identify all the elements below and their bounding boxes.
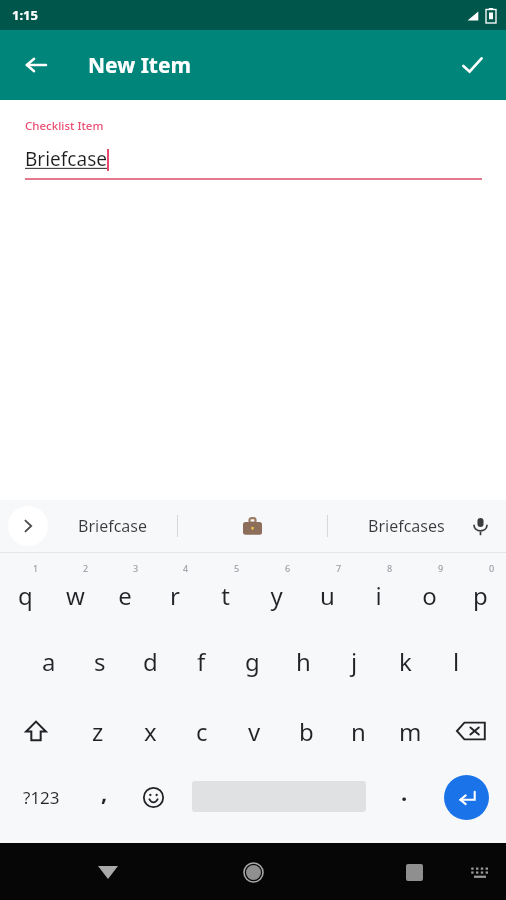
staticText: m — [399, 715, 422, 748]
button[interactable]: 4 — [150, 558, 200, 626]
button[interactable]: 5 — [200, 558, 251, 626]
staticText: q — [18, 579, 33, 612]
staticText: New Item — [88, 51, 191, 80]
button[interactable]: ?123 — [12, 770, 70, 824]
staticText: h — [296, 645, 311, 678]
staticText: 0 — [489, 562, 495, 574]
button[interactable]: 7 — [302, 558, 353, 626]
staticText: Briefcase — [78, 515, 148, 537]
staticText: r — [170, 579, 180, 612]
button[interactable]: h — [278, 626, 329, 696]
staticText: b — [299, 715, 314, 748]
button[interactable]: m — [384, 696, 436, 766]
staticText: i — [375, 579, 382, 612]
staticText: v — [248, 715, 261, 748]
button[interactable]: z — [71, 696, 124, 766]
staticText: y — [270, 579, 283, 612]
button[interactable]: a — [24, 626, 74, 696]
staticText: Briefcases — [368, 515, 445, 537]
staticText: ?123 — [23, 786, 60, 809]
staticText: p — [473, 579, 488, 612]
staticText: d — [143, 645, 158, 678]
staticText: x — [144, 715, 157, 748]
staticText: l — [453, 645, 460, 678]
button[interactable]: More suggestions — [8, 506, 48, 546]
button[interactable]: 2 — [50, 558, 100, 626]
staticText: f — [197, 645, 206, 678]
button[interactable]: 9 — [404, 558, 455, 626]
staticText: . — [401, 777, 408, 807]
staticText: 4 — [183, 562, 189, 574]
staticText: Briefcase — [25, 146, 107, 172]
button[interactable]: Briefcase emoji — [230, 504, 274, 548]
staticText: 1 — [33, 562, 39, 574]
button[interactable]: Briefcases — [346, 500, 466, 552]
button[interactable]: Recents — [392, 850, 436, 894]
button[interactable]: Shift — [0, 696, 71, 766]
button[interactable]: g — [227, 626, 278, 696]
button[interactable]: , — [82, 770, 126, 824]
button[interactable]: Enter — [444, 775, 489, 820]
staticText: 7 — [336, 562, 342, 574]
staticText: 6 — [285, 562, 291, 574]
staticText: n — [351, 715, 366, 748]
staticText: Checklist Item — [25, 118, 104, 134]
staticText: e — [118, 579, 132, 612]
staticText: u — [320, 579, 335, 612]
button[interactable]: 0 — [455, 558, 506, 626]
staticText: w — [66, 579, 85, 612]
button[interactable]: Home — [231, 850, 275, 894]
staticText: , — [101, 777, 108, 807]
button[interactable]: Briefcase — [58, 500, 168, 552]
button[interactable]: Voice input — [460, 506, 500, 546]
button[interactable]: s — [74, 626, 125, 696]
button[interactable]: f — [176, 626, 227, 696]
staticText: 5 — [234, 562, 240, 574]
button[interactable]: l — [431, 626, 482, 696]
button[interactable]: x — [124, 696, 176, 766]
button[interactable]: 8 — [353, 558, 404, 626]
staticText: 3 — [133, 562, 139, 574]
button[interactable]: b — [280, 696, 332, 766]
staticText: 9 — [438, 562, 444, 574]
staticText: 1:15 — [12, 6, 38, 24]
staticText: t — [221, 579, 230, 612]
button[interactable]: 3 — [100, 558, 150, 626]
staticText: 2 — [83, 562, 89, 574]
button[interactable]: . — [382, 770, 426, 824]
button[interactable]: v — [228, 696, 280, 766]
button[interactable]: Emoji — [131, 775, 175, 819]
button[interactable]: Back — [86, 850, 130, 894]
staticText: o — [422, 579, 437, 612]
button[interactable]: 1 — [0, 558, 50, 626]
staticText: j — [351, 645, 358, 678]
staticText: a — [42, 645, 56, 678]
staticText: k — [399, 645, 412, 678]
button[interactable]: Backspace — [436, 696, 506, 766]
button[interactable]: j — [329, 626, 380, 696]
staticText: z — [92, 715, 104, 748]
button[interactable]: Switch keyboard — [460, 852, 500, 892]
staticText: g — [245, 645, 260, 678]
staticText: c — [196, 715, 208, 748]
button[interactable]: 6 — [251, 558, 302, 626]
button[interactable]: Back — [14, 43, 58, 87]
button[interactable]: Save — [450, 43, 494, 87]
button[interactable]: k — [380, 626, 431, 696]
button[interactable]: d — [125, 626, 176, 696]
button[interactable]: n — [332, 696, 384, 766]
staticText: s — [94, 645, 106, 678]
button[interactable]: c — [176, 696, 228, 766]
staticText: 8 — [387, 562, 393, 574]
